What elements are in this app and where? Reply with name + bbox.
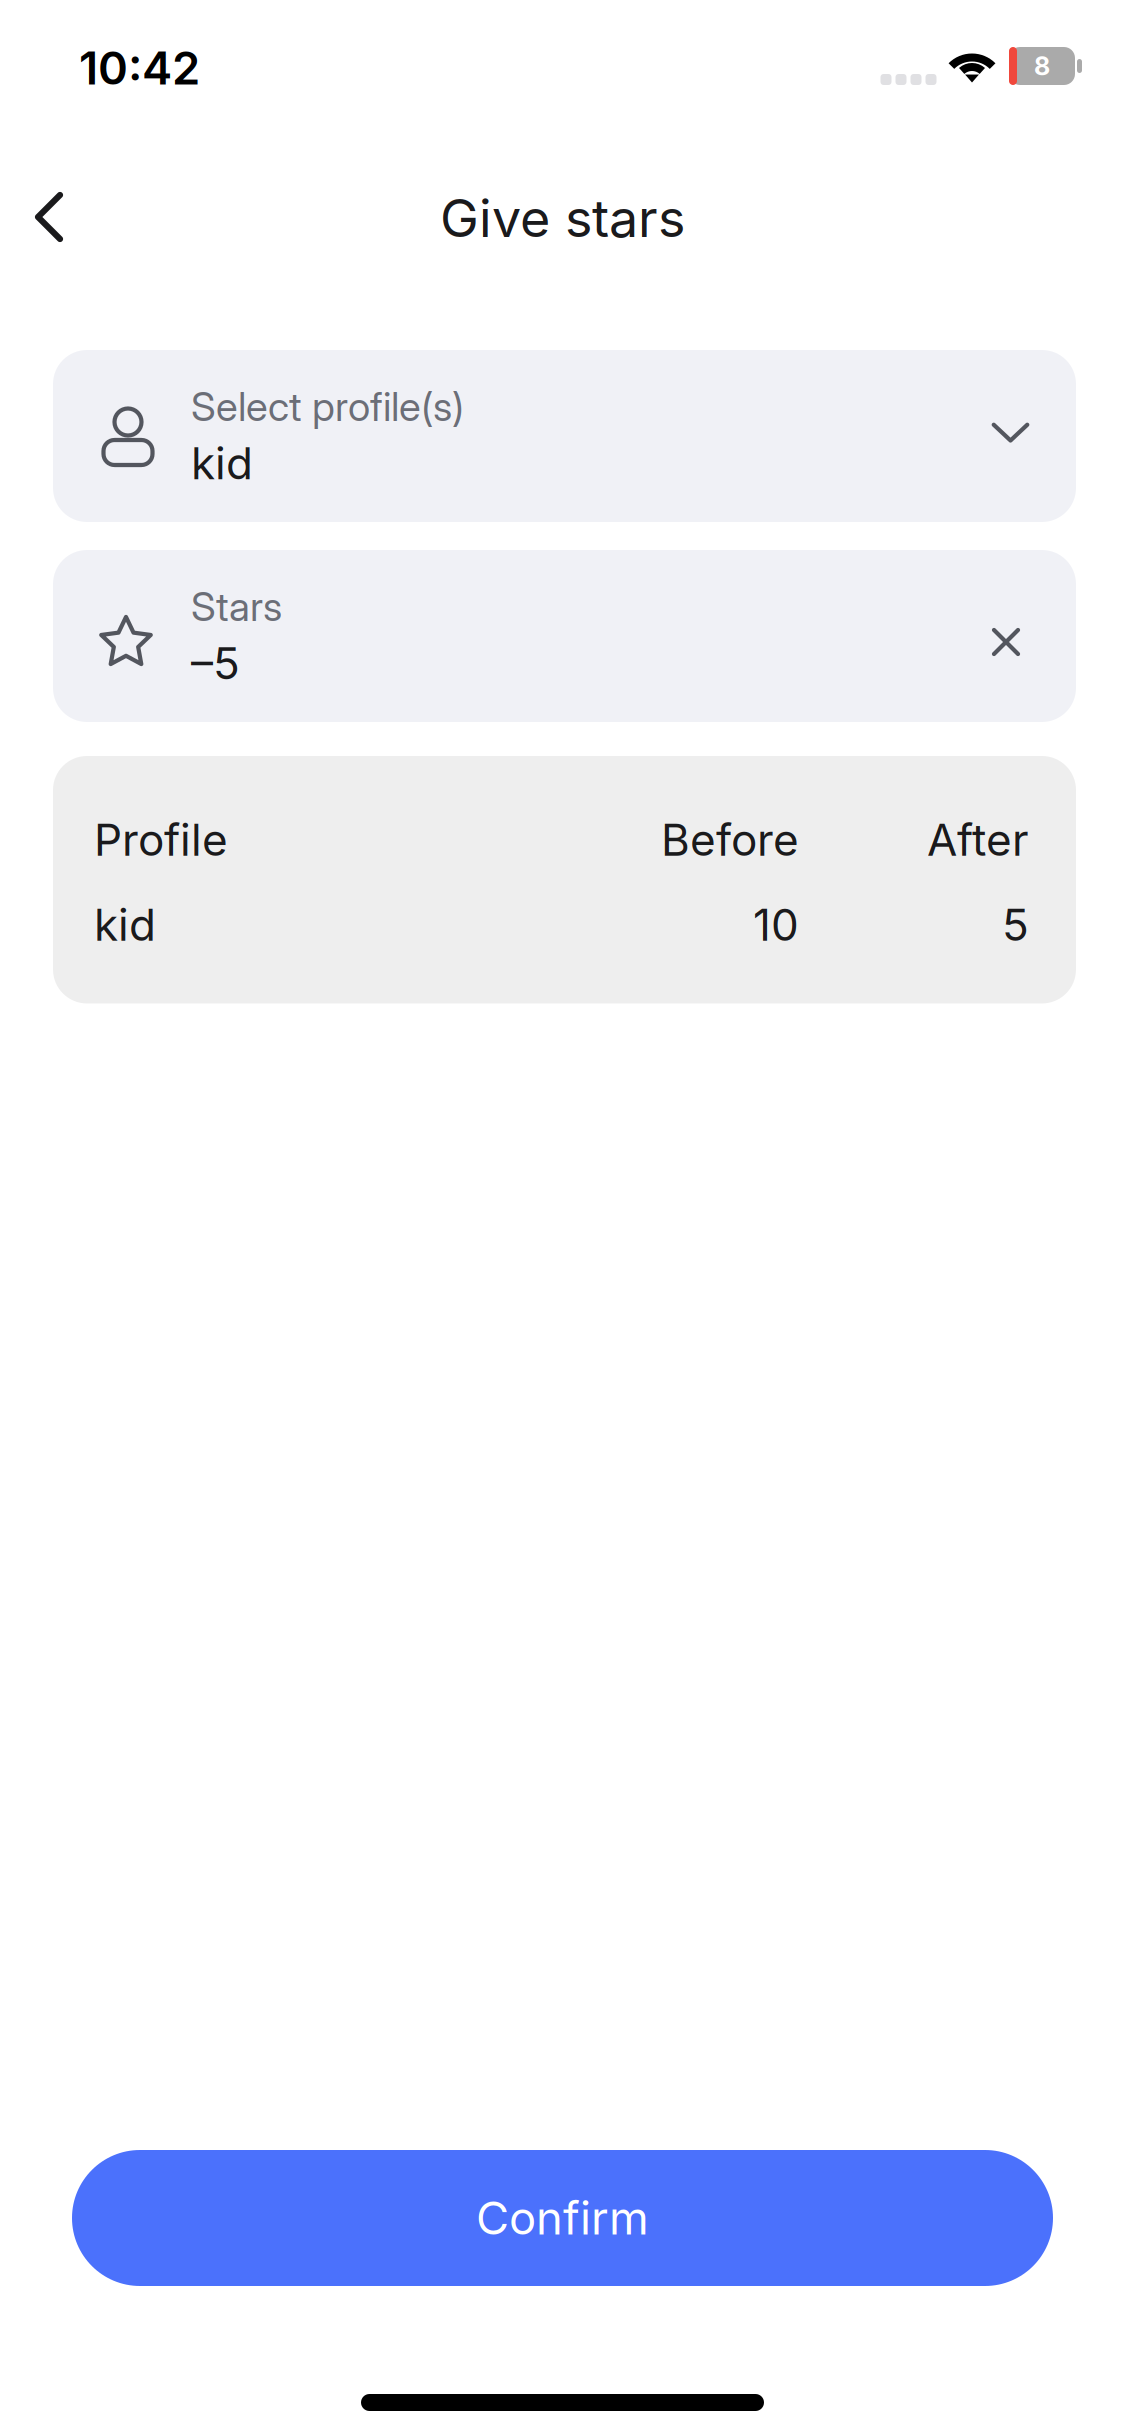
button[interactable]: Back — [0, 168, 100, 268]
staticText: –5 — [191, 637, 240, 690]
staticText: Give stars — [440, 186, 685, 249]
staticText: Before — [661, 813, 799, 866]
staticText: 5 — [1002, 898, 1029, 951]
staticText: 10:42 — [79, 41, 200, 95]
staticText: Stars — [191, 582, 282, 631]
staticText: 10 — [753, 898, 799, 951]
button[interactable]: Stars — [53, 550, 1076, 722]
staticText: Confirm — [476, 2191, 649, 2245]
button[interactable]: Select profile(s) — [53, 350, 1076, 522]
staticText: kid — [191, 437, 253, 490]
staticText: 8 — [1034, 51, 1050, 81]
staticText: Select profile(s) — [191, 382, 464, 431]
staticText: kid — [94, 898, 156, 951]
staticText: After — [927, 813, 1029, 866]
button[interactable]: Confirm — [72, 2150, 1053, 2286]
staticText: Profile — [94, 813, 228, 866]
